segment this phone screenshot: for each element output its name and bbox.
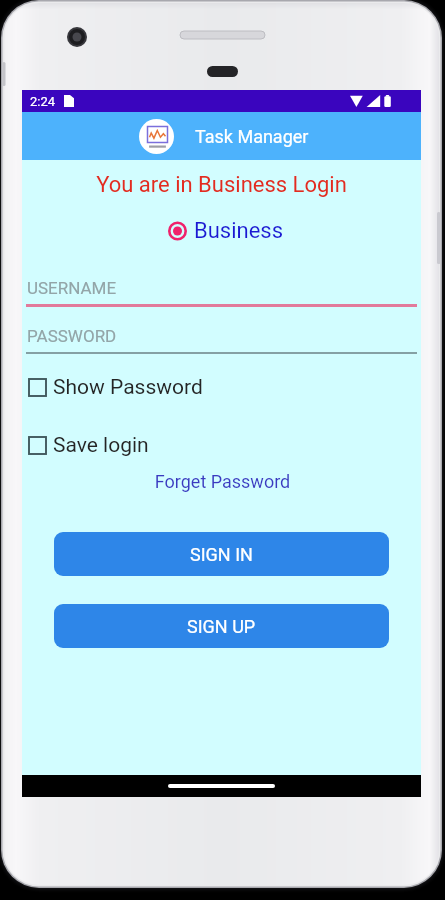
button[interactable]: Business	[168, 218, 284, 244]
button[interactable]: SIGN UP	[54, 604, 389, 648]
button[interactable]: Save login	[22, 432, 421, 458]
button[interactable]: SIGN IN	[54, 532, 389, 576]
staticText: USERNAME	[27, 278, 117, 298]
staticText: Show Password	[53, 375, 203, 400]
staticText: Save login	[53, 433, 149, 458]
staticText: 2:24	[30, 94, 56, 109]
button[interactable]: Forget Password	[23, 471, 422, 492]
button[interactable]: Show Password	[22, 374, 421, 400]
staticText: Task Manager	[195, 126, 309, 147]
staticText: SIGN UP	[187, 616, 256, 637]
staticText: You are in Business Login	[22, 172, 421, 198]
staticText: PASSWORD	[27, 326, 117, 346]
staticText: Business	[194, 218, 284, 244]
staticText: SIGN IN	[190, 544, 253, 565]
